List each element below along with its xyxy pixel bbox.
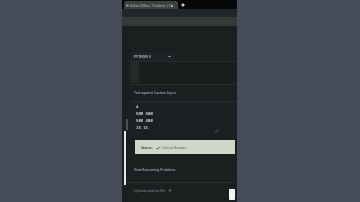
button[interactable]: Online Offline - Problems | C	[124, 1, 178, 10]
staticText: PYTHON 3	[134, 54, 151, 59]
staticText: Status:	[141, 145, 153, 150]
button[interactable]: Close tab	[169, 3, 175, 9]
staticText: 500 500	[136, 111, 153, 118]
button[interactable]: PYTHON 3	[131, 52, 175, 61]
staticText: 500 400	[136, 118, 153, 125]
button[interactable]: Status:	[135, 140, 235, 154]
button[interactable]: New tab	[179, 1, 186, 8]
staticText: 4	[136, 104, 139, 111]
staticText: Upload code as file	[134, 188, 166, 193]
button[interactable]: Upload code as file	[134, 188, 172, 193]
staticText: 15 15	[136, 125, 148, 132]
button[interactable]: View Remaining Problems	[134, 167, 176, 172]
staticText: Online Offline - Problems | C	[130, 4, 171, 8]
staticText: Correct Answer	[162, 145, 187, 150]
staticText: Test against Custom Input	[134, 90, 176, 95]
